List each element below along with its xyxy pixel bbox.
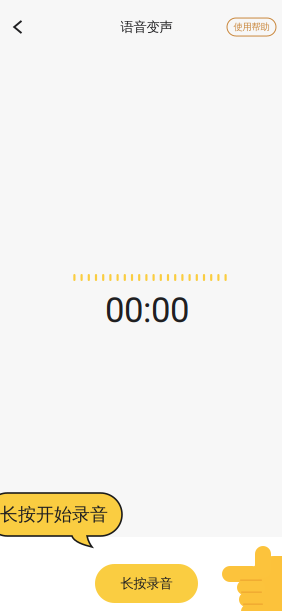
staticText: 长按录音: [120, 575, 172, 592]
staticText: 00:00: [105, 290, 189, 331]
button[interactable]: 使用帮助: [227, 18, 276, 36]
button[interactable]: 长按录音: [95, 564, 198, 603]
staticText: 语音变声: [120, 19, 172, 35]
button[interactable]: Back: [1, 10, 35, 44]
staticText: 使用帮助: [233, 21, 269, 33]
staticText: 长按开始录音: [0, 503, 108, 526]
